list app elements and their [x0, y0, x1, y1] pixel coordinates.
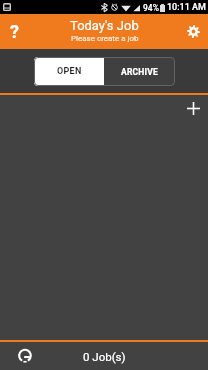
button[interactable]: OPEN	[34, 57, 104, 86]
button[interactable]: Help	[0, 14, 30, 49]
button[interactable]: Settings	[178, 14, 208, 49]
staticText: 10:11 AM	[167, 2, 206, 13]
staticText: 0 Job(s)	[83, 350, 126, 363]
staticText: Today's Job	[70, 18, 139, 33]
staticText: ?	[10, 21, 19, 42]
staticText: Please create a job	[71, 34, 139, 43]
button[interactable]: Add job	[179, 94, 207, 122]
staticText: 94%	[143, 3, 159, 13]
staticText: ARCHIVE	[121, 67, 158, 77]
button[interactable]: Dashboard	[13, 344, 37, 368]
button[interactable]: ARCHIVE	[104, 57, 175, 86]
staticText: OPEN	[57, 66, 82, 77]
